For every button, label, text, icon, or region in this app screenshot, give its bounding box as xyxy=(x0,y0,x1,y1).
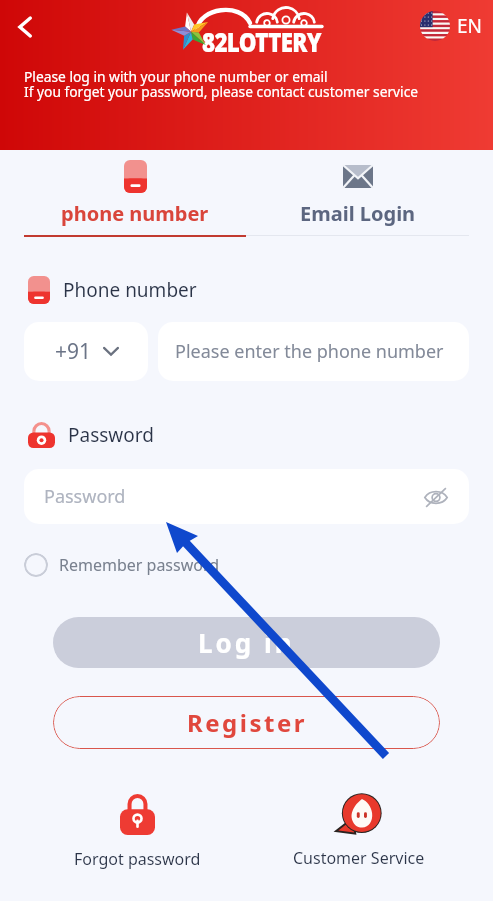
button[interactable]: Register xyxy=(53,696,440,749)
staticText: +91 xyxy=(55,337,92,366)
staticText: Register xyxy=(187,706,307,739)
button[interactable]: Forgot password xyxy=(67,792,207,870)
button[interactable]: Back xyxy=(8,9,44,45)
staticText: Email Login xyxy=(300,200,416,227)
staticText: Phone number xyxy=(63,277,197,303)
button[interactable]: Customer Service xyxy=(289,792,429,869)
button[interactable]: Remember password xyxy=(24,553,220,577)
staticText: phone number xyxy=(61,200,209,227)
button[interactable]: Language EN xyxy=(420,11,483,41)
staticText: Password xyxy=(68,422,154,448)
button[interactable]: Log in xyxy=(53,617,440,668)
staticText: Log in xyxy=(198,625,295,660)
button[interactable]: phone number xyxy=(24,149,246,235)
button[interactable]: Password xyxy=(24,469,469,524)
staticText: Please enter the phone number xyxy=(175,339,444,364)
button[interactable]: Show password xyxy=(423,484,449,510)
staticText: Customer Service xyxy=(293,847,425,869)
staticText: EN xyxy=(457,13,483,39)
button[interactable]: Email Login xyxy=(246,149,469,235)
button[interactable]: Please enter the phone number xyxy=(158,322,469,381)
button[interactable]: +91 xyxy=(24,322,148,381)
staticText: Please log in with your phone number or … xyxy=(24,67,419,101)
staticText: Remember password xyxy=(59,554,220,576)
staticText: 82LOTTERY xyxy=(202,24,321,59)
staticText: Forgot password xyxy=(74,848,201,870)
staticText: Password xyxy=(44,484,423,509)
